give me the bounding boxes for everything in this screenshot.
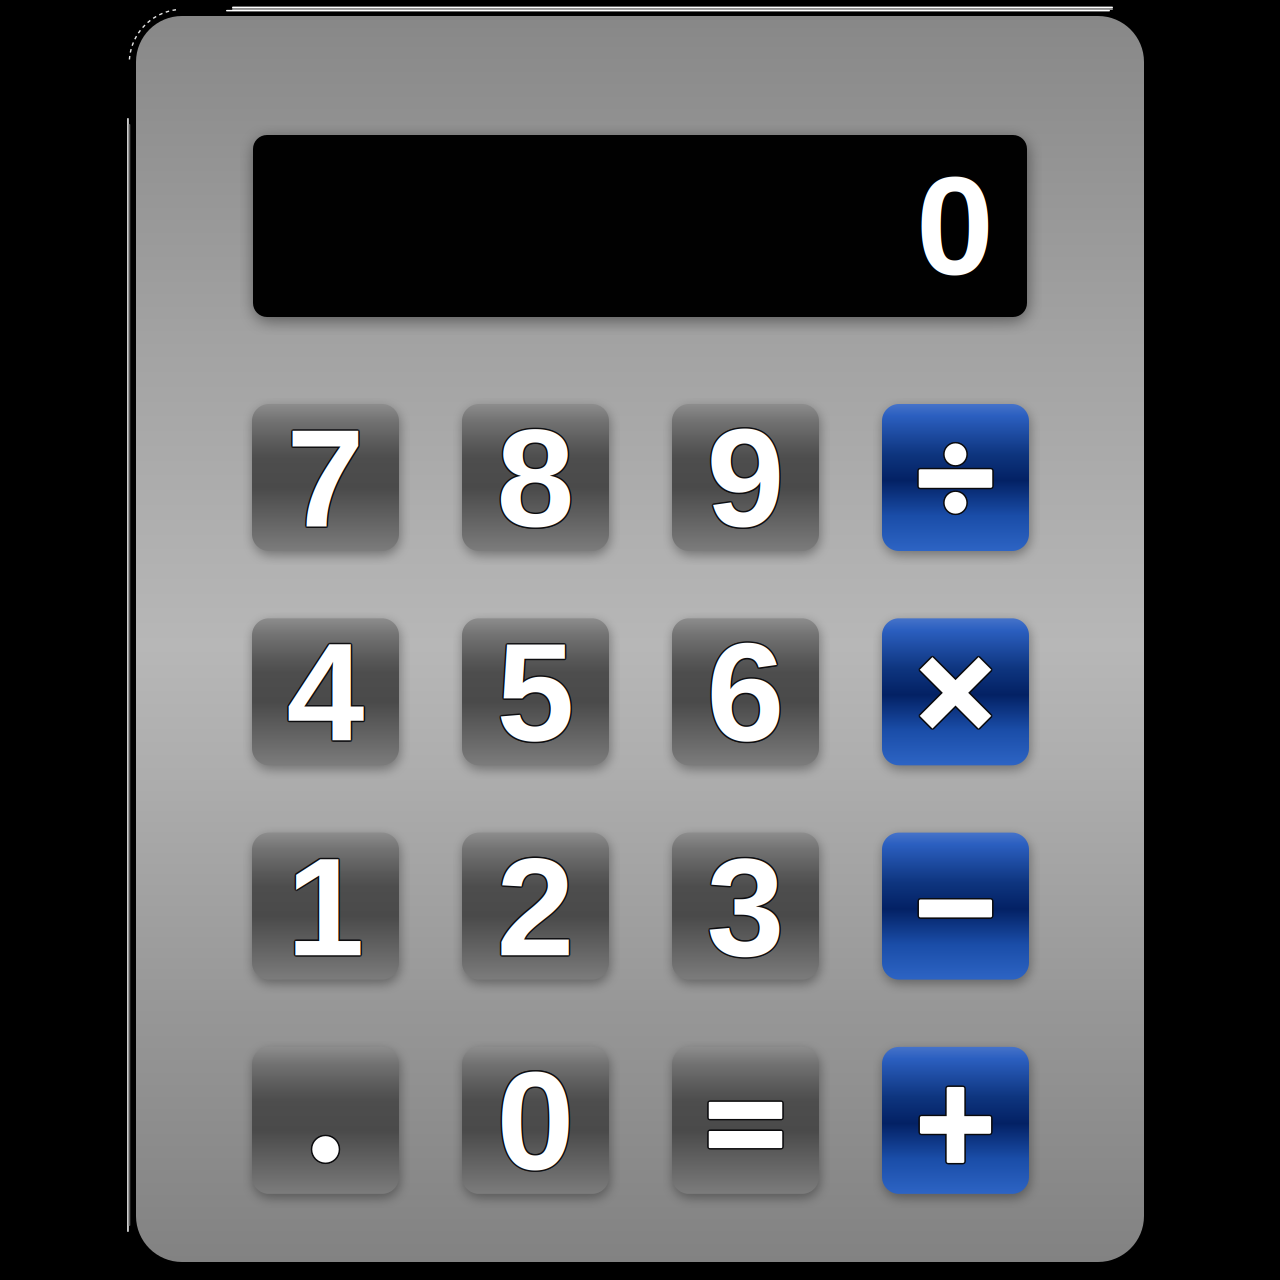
- staticText: 6: [706, 614, 784, 770]
- staticText: 4: [285, 614, 363, 770]
- staticText: 8: [498, 399, 576, 555]
- staticText: 6: [705, 615, 783, 772]
- staticText: 4: [286, 616, 364, 772]
- staticText: 7: [288, 401, 366, 557]
- button[interactable]: Decimal point: [252, 1047, 399, 1194]
- staticText: 3: [706, 828, 784, 985]
- staticText: 2: [495, 829, 573, 986]
- staticText: 1: [285, 827, 363, 984]
- staticText: 3: [706, 830, 784, 986]
- button[interactable]: Multiply: [882, 618, 1029, 765]
- staticText: 9: [706, 400, 784, 556]
- button[interactable]: Equals: [672, 1047, 819, 1194]
- staticText: 5: [496, 613, 574, 769]
- staticText: 9: [706, 401, 784, 558]
- staticText: 0: [496, 1043, 574, 1199]
- staticText: 7: [285, 401, 363, 557]
- button[interactable]: 4: [252, 618, 399, 765]
- staticText: 6: [708, 613, 786, 769]
- staticText: 1: [286, 827, 364, 983]
- staticText: 2: [495, 828, 573, 985]
- button[interactable]: 8: [462, 404, 609, 551]
- staticText: 8: [496, 398, 574, 555]
- staticText: 9: [708, 401, 786, 557]
- staticText: 1: [288, 827, 366, 984]
- staticText: 5: [495, 613, 573, 769]
- staticText: 1: [285, 828, 363, 985]
- staticText: 7: [285, 400, 363, 556]
- staticText: 2: [496, 827, 574, 983]
- staticText: 6: [708, 614, 786, 770]
- staticText: 0: [496, 1041, 574, 1198]
- staticText: 6: [706, 616, 784, 772]
- staticText: 0: [495, 1042, 573, 1198]
- staticText: 5: [498, 614, 576, 770]
- button[interactable]: Add: [882, 1047, 1029, 1194]
- staticText: 4: [286, 614, 364, 770]
- staticText: 2: [498, 827, 576, 984]
- button[interactable]: 2: [462, 833, 609, 980]
- staticText: 8: [495, 399, 573, 555]
- staticText: 1: [286, 828, 364, 985]
- staticText: 5: [498, 613, 576, 769]
- staticText: 4: [285, 615, 363, 772]
- staticText: 7: [285, 399, 363, 555]
- staticText: 0: [498, 1043, 576, 1199]
- staticText: 0: [498, 1042, 576, 1198]
- staticText: 6: [708, 615, 786, 772]
- staticText: 7: [286, 398, 364, 555]
- button[interactable]: 5: [462, 618, 609, 765]
- button[interactable]: 7: [252, 404, 399, 551]
- staticText: 0: [496, 1044, 574, 1201]
- staticText: 1: [288, 829, 366, 986]
- staticText: 5: [495, 615, 573, 772]
- button[interactable]: Subtract: [882, 833, 1029, 980]
- staticText: 3: [706, 827, 784, 983]
- staticText: 9: [708, 399, 786, 555]
- staticText: 0: [495, 1043, 573, 1199]
- staticText: 4: [286, 613, 364, 769]
- staticText: 7: [288, 400, 366, 556]
- button[interactable]: Divide: [882, 404, 1029, 551]
- staticText: 8: [496, 401, 574, 558]
- staticText: 9: [705, 400, 783, 556]
- button[interactable]: 9: [672, 404, 819, 551]
- staticText: 6: [706, 613, 784, 769]
- staticText: 4: [288, 615, 366, 772]
- staticText: 6: [705, 614, 783, 770]
- staticText: 8: [498, 401, 576, 557]
- staticText: 5: [496, 616, 574, 772]
- staticText: 1: [285, 829, 363, 986]
- staticText: 5: [498, 615, 576, 772]
- staticText: 4: [288, 614, 366, 770]
- staticText: 4: [288, 613, 366, 769]
- button[interactable]: 6: [672, 618, 819, 765]
- staticText: 4: [285, 613, 363, 769]
- button[interactable]: 3: [672, 833, 819, 980]
- staticText: 2: [496, 830, 574, 986]
- staticText: 7: [286, 401, 364, 558]
- staticText: 2: [495, 827, 573, 984]
- staticText: 3: [708, 828, 786, 985]
- staticText: 9: [706, 398, 784, 555]
- staticText: 7: [288, 399, 366, 555]
- staticText: 3: [705, 829, 783, 986]
- button[interactable]: 0: [462, 1047, 609, 1194]
- staticText: 8: [495, 401, 573, 557]
- staticText: 8: [498, 400, 576, 556]
- staticText: 2: [498, 828, 576, 985]
- staticText: 5: [495, 614, 573, 770]
- staticText: 7: [286, 400, 364, 556]
- staticText: 1: [286, 830, 364, 986]
- staticText: 5: [496, 614, 574, 770]
- staticText: 0: [916, 148, 994, 304]
- button[interactable]: 1: [252, 833, 399, 980]
- staticText: 3: [705, 827, 783, 984]
- staticText: 2: [496, 828, 574, 985]
- staticText: 2: [498, 829, 576, 986]
- staticText: 1: [288, 828, 366, 985]
- staticText: 3: [708, 827, 786, 984]
- staticText: 9: [705, 399, 783, 555]
- staticText: 8: [496, 400, 574, 556]
- staticText: 9: [708, 400, 786, 556]
